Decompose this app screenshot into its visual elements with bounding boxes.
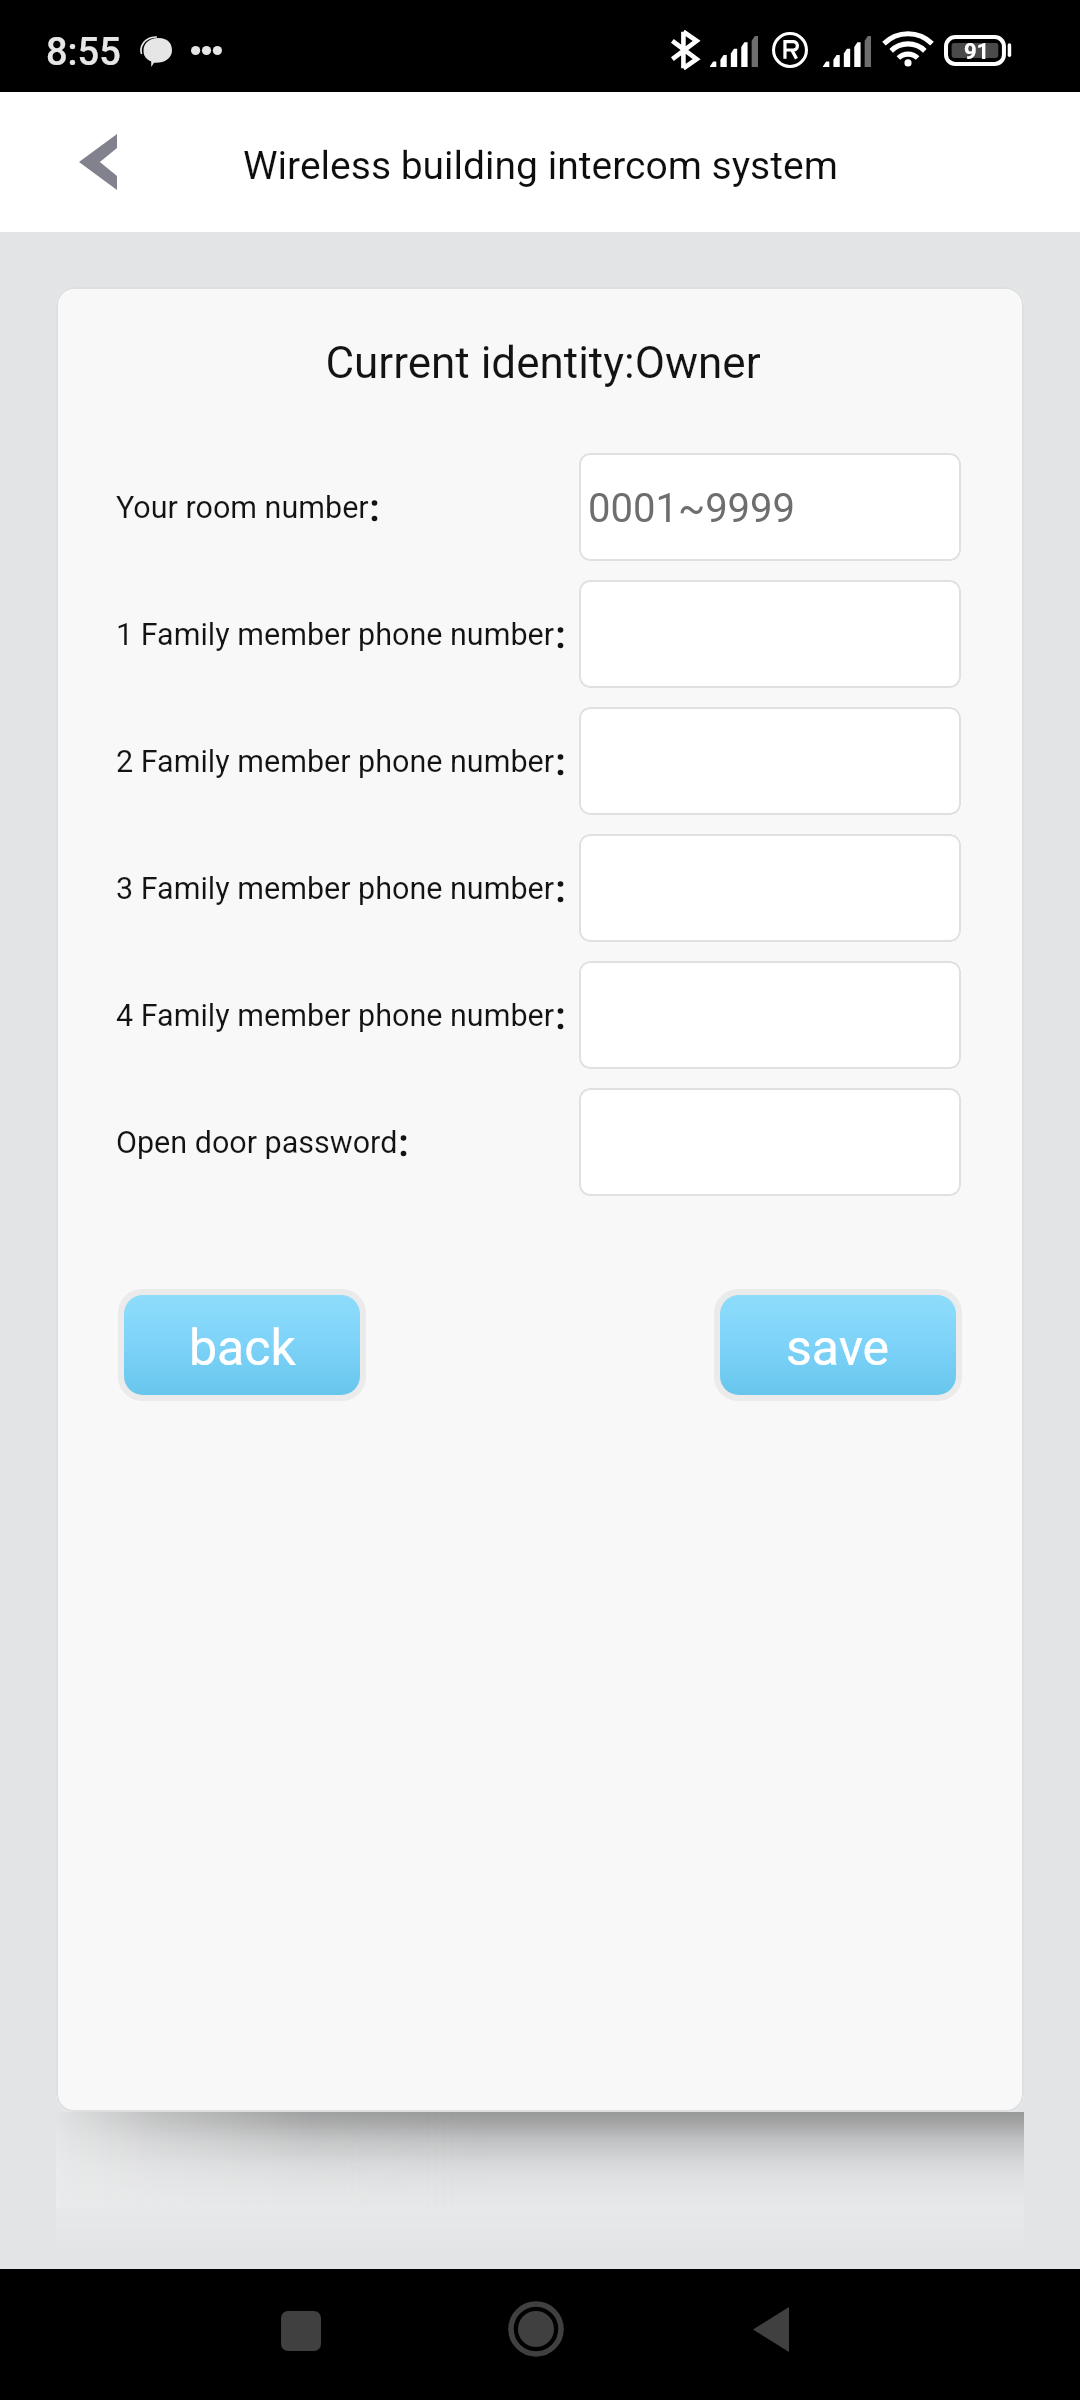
staticText: 3 Family member phone number xyxy=(116,871,555,907)
staticText: 8:55 xyxy=(46,30,121,75)
button[interactable]: save xyxy=(720,1295,956,1395)
staticText: Wireless building intercom system xyxy=(243,143,838,189)
button[interactable] xyxy=(579,580,961,688)
staticText: 1 Family member phone number xyxy=(116,617,555,653)
staticText: Current identity:Owner xyxy=(59,337,1024,389)
staticText: 4 Family member phone number xyxy=(116,998,555,1034)
staticText: 2 Family member phone number xyxy=(116,744,555,780)
staticText: Open door password xyxy=(116,1125,398,1161)
button[interactable] xyxy=(579,961,961,1069)
button[interactable] xyxy=(579,834,961,942)
button[interactable]: Back xyxy=(711,2269,831,2389)
button[interactable]: 0001~9999 xyxy=(579,453,961,561)
staticText: 0001~9999 xyxy=(588,485,796,532)
staticText: 91 xyxy=(964,39,990,65)
staticText: back xyxy=(189,1319,296,1378)
button[interactable]: Back xyxy=(52,116,144,208)
button[interactable] xyxy=(579,1088,961,1196)
button[interactable] xyxy=(579,707,961,815)
button[interactable]: Recents xyxy=(241,2271,361,2391)
staticText: Your room number xyxy=(116,490,369,526)
button[interactable]: back xyxy=(124,1295,360,1395)
staticText: save xyxy=(786,1319,890,1378)
button[interactable]: Home xyxy=(476,2269,596,2389)
